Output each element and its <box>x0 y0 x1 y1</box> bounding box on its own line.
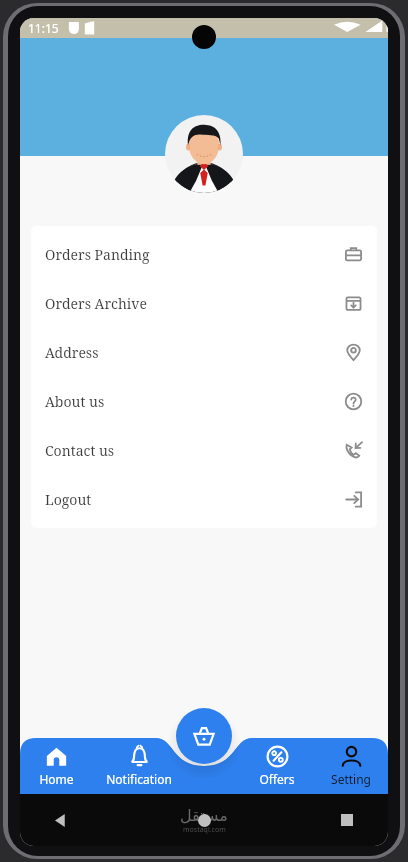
button[interactable]: Recents <box>334 807 360 833</box>
staticText: Setting <box>331 771 371 787</box>
button[interactable]: Offers <box>240 738 314 794</box>
button[interactable]: About us <box>31 377 377 426</box>
staticText: Orders Archive <box>45 294 344 313</box>
button[interactable]: Address <box>31 328 377 377</box>
button[interactable]: Setting <box>314 738 388 794</box>
button[interactable]: Logout <box>31 475 377 524</box>
staticText: 11:15 <box>28 20 59 36</box>
staticText: Notification <box>106 771 172 787</box>
button[interactable]: Orders Panding <box>31 230 377 279</box>
staticText: Contact us <box>45 441 344 460</box>
button[interactable]: Home <box>20 738 93 794</box>
staticText: About us <box>45 392 344 411</box>
button[interactable]: Cart <box>176 708 232 764</box>
button[interactable]: Home <box>191 807 217 833</box>
staticText: Home <box>39 771 74 787</box>
button[interactable]: Notification <box>93 738 185 794</box>
button[interactable]: Back <box>48 807 74 833</box>
staticText: Offers <box>259 771 295 787</box>
staticText: Address <box>45 343 344 362</box>
staticText: mostaql.com <box>183 825 226 835</box>
button[interactable]: Orders Archive <box>31 279 377 328</box>
staticText: Logout <box>45 490 344 509</box>
button[interactable]: Contact us <box>31 426 377 475</box>
staticText: Orders Panding <box>45 245 344 264</box>
staticText: مستقل <box>180 806 228 825</box>
